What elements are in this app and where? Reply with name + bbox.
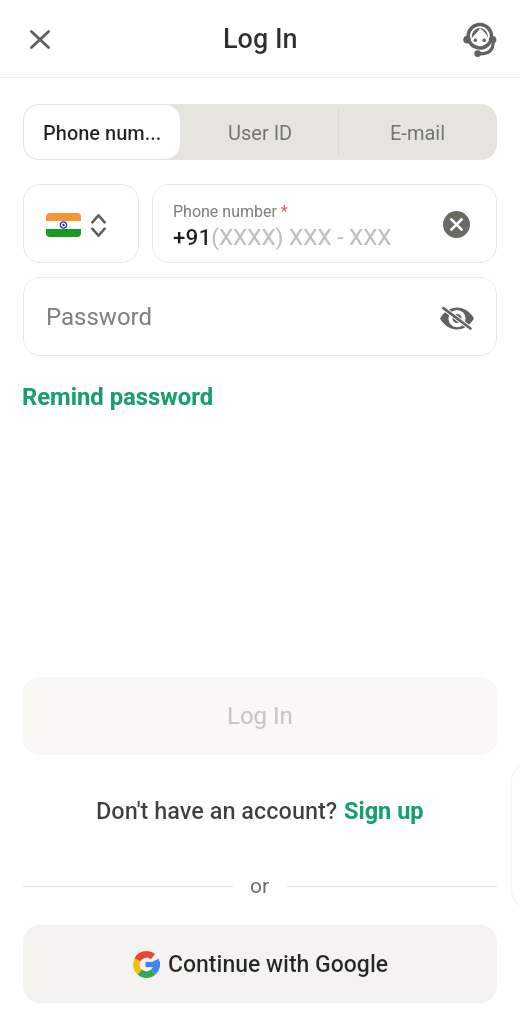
staticText: Log In <box>227 702 293 730</box>
staticText: or <box>250 874 270 899</box>
button[interactable]: Log In <box>23 677 497 755</box>
button[interactable]: Remind password <box>22 383 214 411</box>
button[interactable]: Customer support <box>458 17 502 61</box>
staticText: User ID <box>228 121 293 144</box>
button[interactable]: Phone num... <box>24 105 180 159</box>
staticText: Phone num... <box>43 121 162 144</box>
staticText: Password <box>46 303 153 331</box>
button[interactable]: E-mail <box>339 104 497 160</box>
staticText: Phone number * <box>173 202 288 221</box>
staticText: Sign up <box>344 797 424 825</box>
staticText: Remind password <box>22 383 214 411</box>
button[interactable]: Select country code <box>23 184 139 263</box>
button[interactable]: Show password <box>438 298 476 336</box>
staticText: Continue with Google <box>168 951 389 978</box>
button[interactable]: User ID <box>181 104 339 160</box>
button[interactable]: Clear phone number <box>439 207 473 241</box>
button[interactable]: Sign up <box>344 797 424 825</box>
staticText: E-mail <box>390 121 446 144</box>
staticText: +91(XXXX) XXX - XXX <box>173 224 392 250</box>
button[interactable]: Password <box>23 277 497 356</box>
staticText: Log In <box>223 23 298 55</box>
button[interactable]: Continue with Google <box>23 925 497 1003</box>
button[interactable]: Close <box>18 17 62 61</box>
button[interactable]: Phone number * <box>152 184 497 263</box>
staticText: Don't have an account? <box>96 797 344 825</box>
